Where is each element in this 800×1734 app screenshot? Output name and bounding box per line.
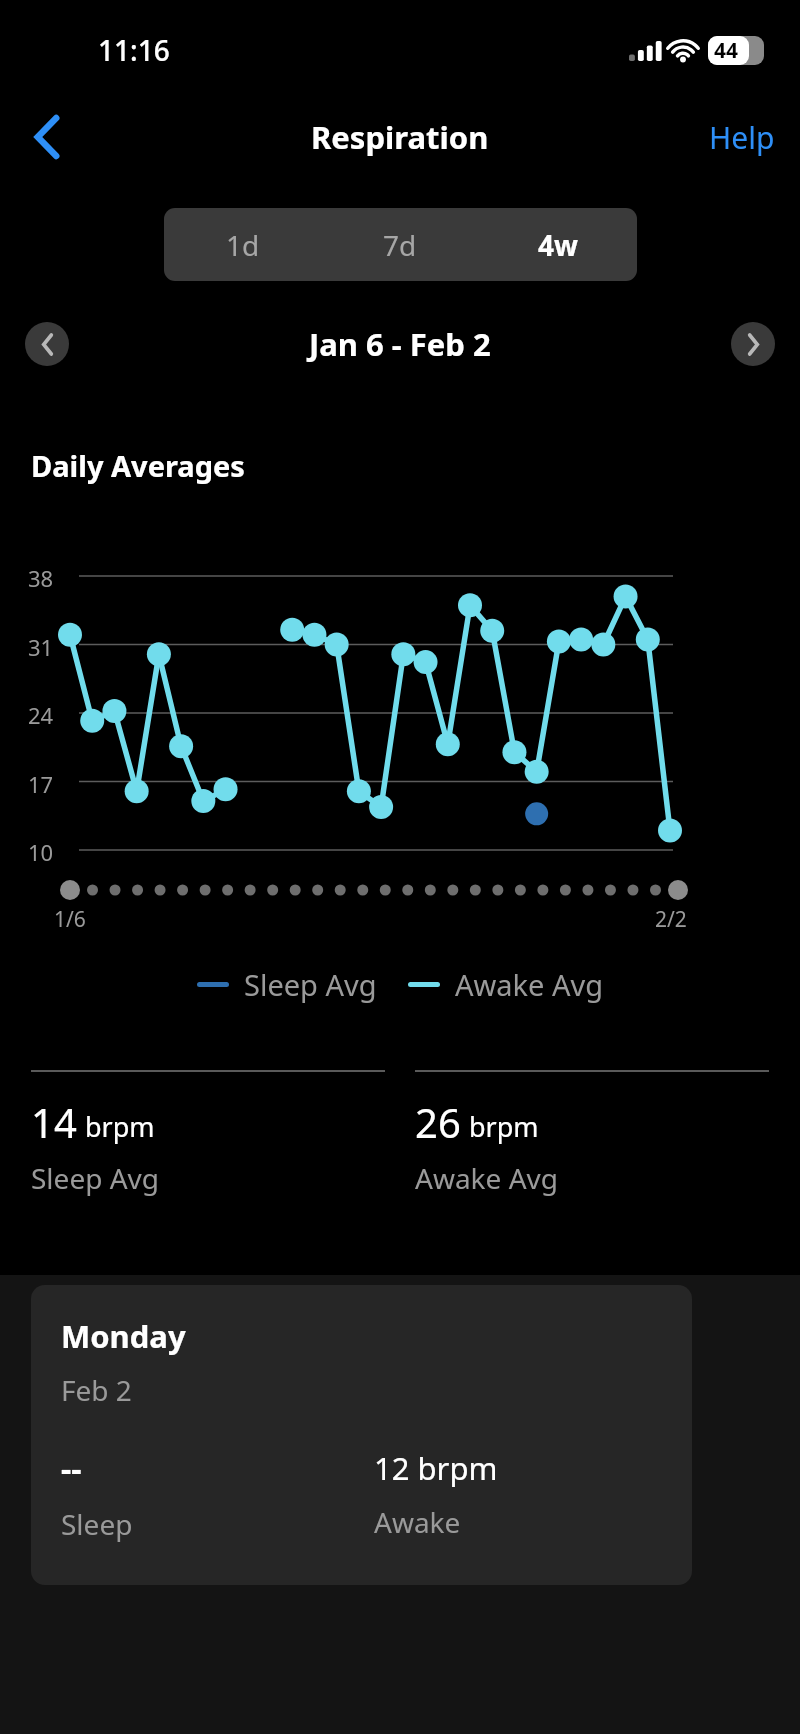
staticText: Daily Averages <box>31 446 245 485</box>
staticText: 17 <box>28 769 54 799</box>
staticText: Sleep Avg <box>31 1159 160 1197</box>
staticText: 10 <box>28 837 54 867</box>
staticText: 1d <box>226 226 260 264</box>
staticText: 2/2 <box>655 905 687 934</box>
staticText: 24 <box>28 700 54 730</box>
button[interactable]: 7d <box>321 208 479 281</box>
staticText: Jan 6 - Feb 2 <box>309 323 491 365</box>
staticText: 12 brpm <box>374 1447 498 1489</box>
staticText: -- <box>61 1447 82 1491</box>
staticText: Awake <box>374 1503 461 1541</box>
staticText: 1/6 <box>54 905 86 934</box>
staticText: Sleep <box>61 1505 133 1543</box>
staticText: 44 <box>714 36 739 65</box>
staticText: 4w <box>538 226 578 264</box>
staticText: 14 <box>31 1095 77 1149</box>
button[interactable]: 1d <box>164 208 321 281</box>
staticText: Sleep Avg <box>244 965 377 1004</box>
staticText: 11:16 <box>98 31 170 69</box>
button[interactable]: Monday <box>31 1285 692 1585</box>
button[interactable]: Previous <box>25 322 69 366</box>
staticText: 38 <box>28 563 54 593</box>
button[interactable]: Help <box>709 117 775 158</box>
staticText: Awake Avg <box>415 1159 558 1197</box>
staticText: 7d <box>383 226 417 264</box>
button[interactable]: Next <box>731 322 775 366</box>
button[interactable]: 4w <box>479 208 637 281</box>
staticText: Awake Avg <box>455 965 604 1004</box>
staticText: Monday <box>61 1315 186 1357</box>
staticText: 31 <box>28 632 54 662</box>
staticText: Respiration <box>311 116 489 158</box>
staticText: Feb 2 <box>61 1371 132 1409</box>
staticText: 26 <box>415 1095 461 1149</box>
staticText: brpm <box>85 1108 155 1145</box>
button[interactable]: Back <box>16 106 78 168</box>
staticText: brpm <box>469 1108 539 1145</box>
